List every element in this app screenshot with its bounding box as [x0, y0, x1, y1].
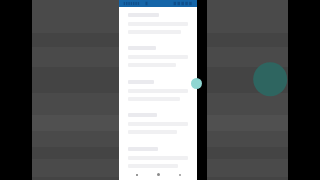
button[interactable]: Recent apps	[175, 170, 184, 179]
button[interactable]: Home	[154, 170, 163, 179]
button[interactable]: Compose	[191, 78, 202, 89]
button[interactable]: Back	[132, 170, 141, 179]
